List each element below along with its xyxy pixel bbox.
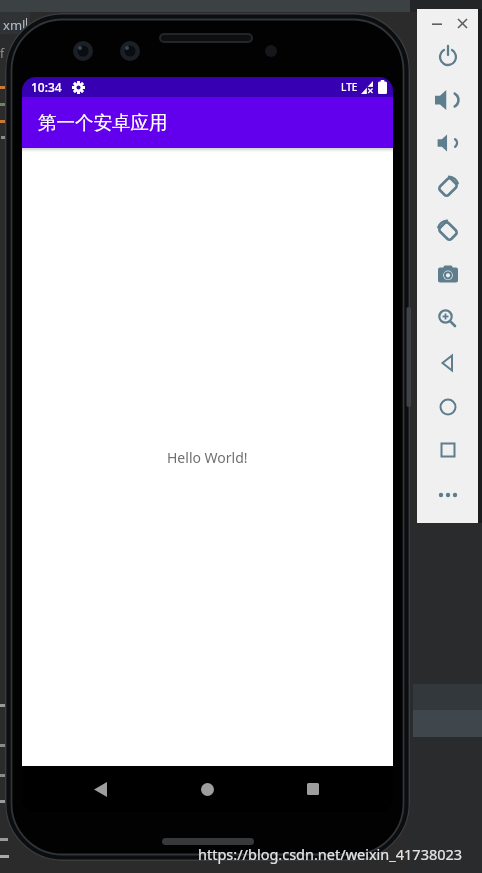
- button[interactable]: [430, 389, 466, 425]
- staticText: LTE: [341, 80, 358, 94]
- staticText: https://blog.csdn.net/weixin_41738023: [198, 844, 463, 864]
- staticText: 第一个安卓应用: [38, 111, 168, 134]
- button[interactable]: [183, 766, 231, 812]
- button[interactable]: [454, 15, 470, 31]
- button[interactable]: [430, 213, 466, 249]
- button[interactable]: [430, 432, 466, 468]
- button[interactable]: [430, 82, 466, 118]
- button[interactable]: [430, 125, 466, 161]
- button[interactable]: [430, 345, 466, 381]
- button[interactable]: [430, 257, 466, 293]
- button[interactable]: [430, 38, 466, 74]
- staticText: xml: [3, 16, 26, 34]
- button[interactable]: [289, 766, 337, 812]
- staticText: Hello World!: [167, 448, 248, 467]
- button[interactable]: [429, 15, 445, 31]
- staticText: 10:34: [31, 79, 62, 95]
- button[interactable]: [76, 766, 124, 812]
- button[interactable]: [430, 169, 466, 205]
- button[interactable]: [430, 477, 466, 513]
- staticText: f: [0, 45, 5, 61]
- button[interactable]: [430, 301, 466, 337]
